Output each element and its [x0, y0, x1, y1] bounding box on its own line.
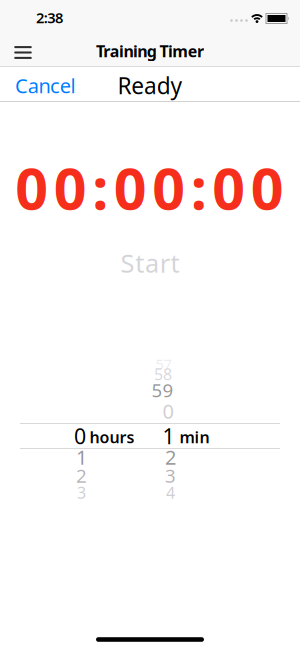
- staticText: 59: [151, 378, 173, 402]
- staticText: 0: [162, 398, 173, 424]
- staticText: 1: [162, 422, 174, 450]
- staticText: hours: [89, 426, 134, 448]
- staticText: 0: [74, 422, 86, 450]
- staticText: 3: [77, 482, 86, 503]
- staticText: 58: [154, 363, 172, 385]
- staticText: 00:00:00: [15, 149, 284, 225]
- staticText: min: [179, 426, 209, 448]
- staticText: Training Timer: [96, 40, 204, 62]
- staticText: 1: [76, 444, 87, 470]
- staticText: 2: [76, 463, 87, 488]
- button[interactable]: Menu: [6, 38, 40, 66]
- staticText: 4: [166, 482, 175, 503]
- staticText: Ready: [118, 70, 182, 100]
- staticText: 2: [165, 444, 176, 470]
- staticText: 3: [165, 463, 176, 488]
- staticText: Start: [120, 246, 180, 280]
- staticText: 2:38: [36, 8, 63, 27]
- staticText: Cancel: [15, 72, 75, 99]
- staticText: 57: [155, 354, 171, 374]
- button[interactable]: Cancel: [15, 65, 75, 106]
- button[interactable]: Start: [112, 242, 188, 284]
